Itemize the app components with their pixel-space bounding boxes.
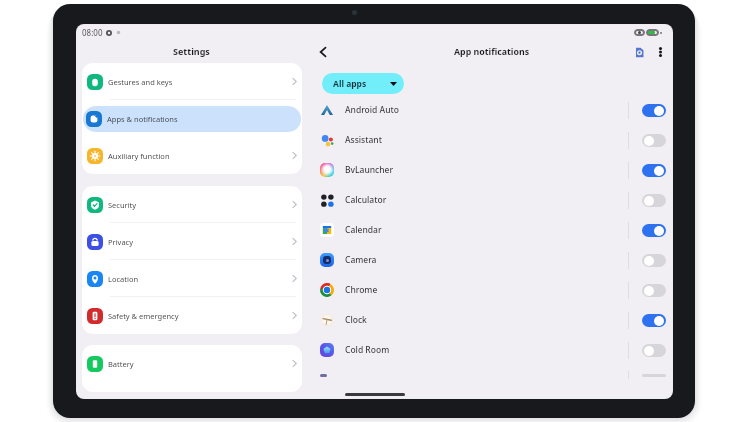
button[interactable]: Apps & notifications bbox=[83, 106, 301, 132]
button[interactable]: Notifications on bbox=[642, 224, 666, 237]
button[interactable]: Clock bbox=[305, 305, 672, 335]
button[interactable]: Back bbox=[314, 43, 331, 60]
button[interactable]: More options bbox=[653, 45, 667, 59]
button[interactable]: Location bbox=[82, 260, 302, 297]
button[interactable]: Notifications on bbox=[642, 314, 666, 327]
button[interactable]: Safety & emergency bbox=[82, 297, 302, 334]
button[interactable]: Assistant bbox=[305, 125, 672, 155]
staticText: Location bbox=[108, 274, 139, 284]
button[interactable]: BvLauncher bbox=[305, 155, 672, 185]
button[interactable]: Notifications off bbox=[642, 194, 666, 207]
staticText: Security bbox=[108, 200, 137, 210]
button[interactable]: Privacy bbox=[82, 223, 302, 260]
button[interactable]: Calculator bbox=[305, 185, 672, 215]
button[interactable]: Camera bbox=[305, 245, 672, 275]
staticText: Android Auto bbox=[345, 104, 399, 116]
button[interactable]: Notifications off bbox=[642, 344, 666, 357]
staticText: Assistant bbox=[345, 134, 382, 146]
button[interactable]: Chrome bbox=[305, 275, 672, 305]
button[interactable]: All apps bbox=[322, 73, 404, 94]
button[interactable]: Cold Room bbox=[305, 335, 672, 365]
staticText: Privacy bbox=[108, 237, 134, 247]
button[interactable]: Auxiliary function bbox=[82, 137, 302, 174]
staticText: All apps bbox=[333, 78, 367, 90]
button[interactable]: Android Auto bbox=[305, 95, 672, 125]
staticText: Cold Room bbox=[345, 344, 390, 356]
staticText: Chrome bbox=[345, 284, 378, 296]
staticText: Settings bbox=[173, 45, 210, 57]
button[interactable]: Notifications on bbox=[642, 104, 666, 117]
staticText: Clock bbox=[345, 314, 367, 326]
staticText: Calendar bbox=[345, 224, 382, 236]
button[interactable]: Notifications on bbox=[642, 164, 666, 177]
button[interactable]: Gestures and keys bbox=[82, 63, 302, 100]
button[interactable]: Calendar bbox=[305, 215, 672, 245]
staticText: App notifications bbox=[454, 46, 530, 58]
button[interactable]: Notifications off bbox=[642, 284, 666, 297]
button[interactable]: Security bbox=[82, 186, 302, 223]
button[interactable]: Search apps bbox=[631, 44, 647, 60]
staticText: Auxiliary function bbox=[108, 151, 170, 161]
staticText: Apps & notifications bbox=[107, 114, 178, 124]
staticText: Gestures and keys bbox=[108, 77, 173, 87]
staticText: BvLauncher bbox=[345, 164, 394, 176]
staticText: Battery bbox=[108, 359, 134, 369]
staticText: 08:00 bbox=[82, 27, 103, 38]
staticText: Camera bbox=[345, 254, 377, 266]
button[interactable]: Notifications off bbox=[642, 134, 666, 147]
staticText: Safety & emergency bbox=[108, 311, 179, 321]
button[interactable]: Battery bbox=[82, 345, 302, 382]
staticText: Calculator bbox=[345, 194, 387, 206]
button[interactable]: Notifications off bbox=[642, 254, 666, 267]
